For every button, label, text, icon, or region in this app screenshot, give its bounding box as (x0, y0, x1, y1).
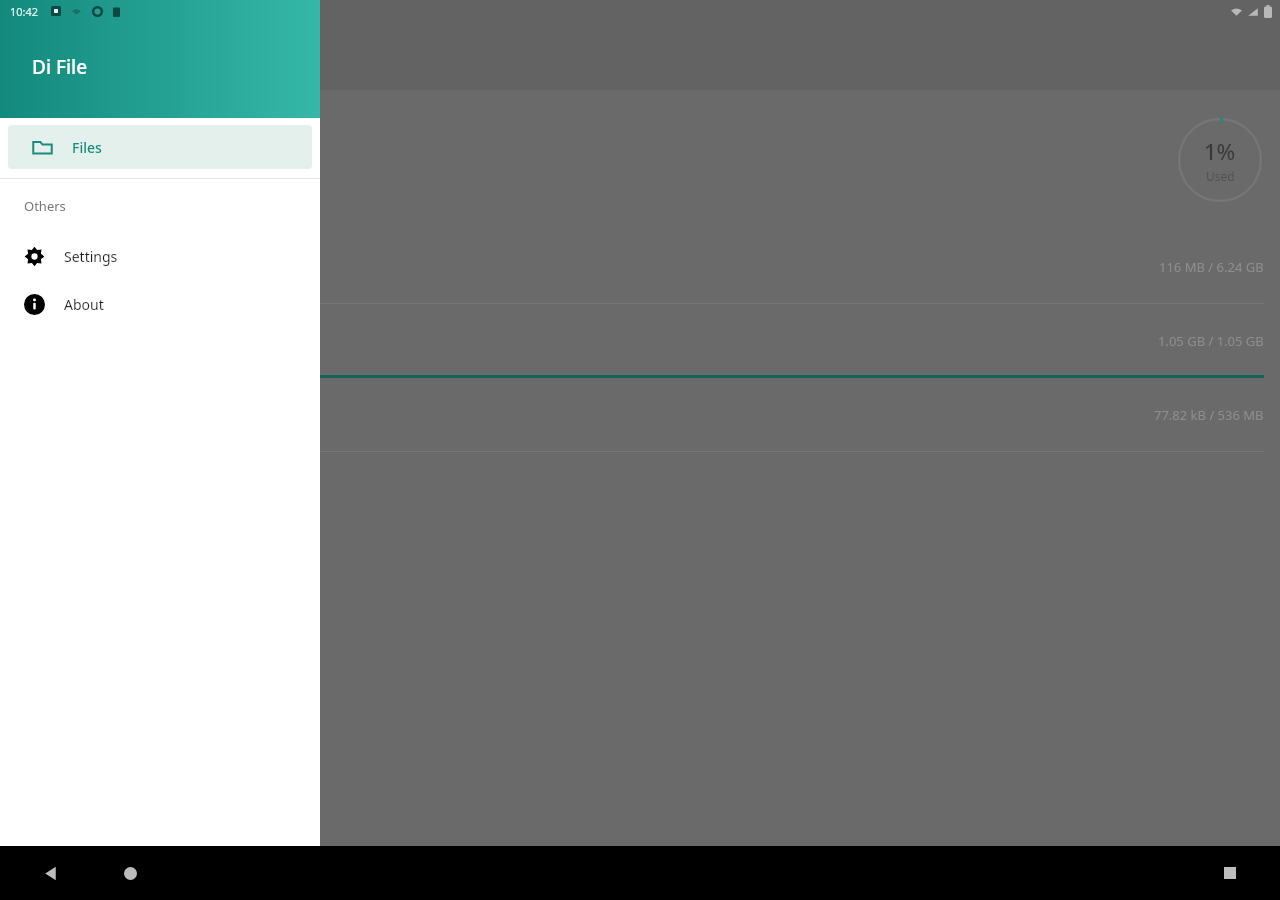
button[interactable]: About (0, 284, 320, 324)
button[interactable]: 1.05 GB / 1.05 GB (0, 304, 1280, 378)
staticText: Settings (64, 247, 118, 266)
staticText: 1% (1204, 136, 1236, 166)
button[interactable]: Settings (0, 236, 320, 276)
staticText: Used (1206, 168, 1235, 184)
staticText: Files (72, 138, 102, 157)
staticText: Others (24, 197, 66, 215)
staticText: About (64, 295, 104, 314)
staticText: 1.05 GB / 1.05 GB (1158, 332, 1264, 350)
button[interactable]: Home (110, 853, 150, 893)
button[interactable]: 77.82 kB / 536 MB (0, 378, 1280, 452)
button[interactable]: Recents (1210, 853, 1250, 893)
button[interactable]: Files (8, 125, 312, 169)
staticText: 77.82 kB / 536 MB (1154, 406, 1264, 424)
staticText: 116 MB / 6.24 GB (1159, 258, 1264, 276)
staticText: Di File (32, 54, 88, 80)
staticText: 10:42 (10, 4, 39, 19)
button[interactable]: 116 MB / 6.24 GB (0, 230, 1280, 304)
button[interactable]: Back (30, 853, 70, 893)
